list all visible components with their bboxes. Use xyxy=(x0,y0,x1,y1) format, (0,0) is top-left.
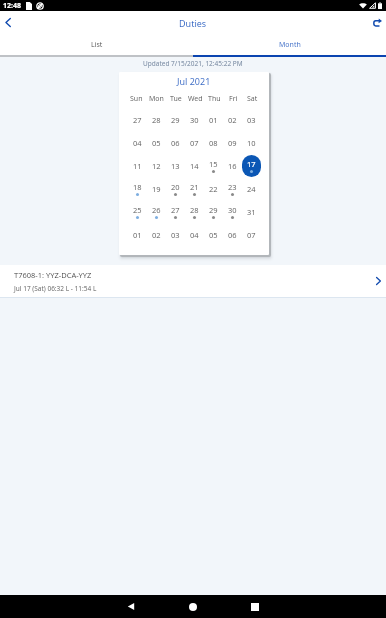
button[interactable]: 01 xyxy=(127,223,147,246)
button[interactable]: 07 xyxy=(185,131,204,154)
staticText: Duties xyxy=(179,17,207,29)
staticText: Wed xyxy=(188,94,203,104)
button[interactable]: 28 xyxy=(185,200,204,223)
staticText: 22 xyxy=(209,184,218,194)
staticText: 04 xyxy=(133,138,142,148)
button[interactable]: 22 xyxy=(204,177,223,200)
button[interactable]: 18 xyxy=(127,177,147,200)
staticText: 06 xyxy=(228,230,237,240)
button[interactable]: 04 xyxy=(185,223,204,246)
button[interactable]: 11 xyxy=(127,154,147,177)
button[interactable]: 20 xyxy=(166,177,185,200)
staticText: 01 xyxy=(133,230,142,240)
button[interactable]: 06 xyxy=(166,131,185,154)
staticText: 03 xyxy=(171,230,180,240)
staticText: Month xyxy=(279,40,301,50)
button[interactable]: 02 xyxy=(223,108,242,131)
button[interactable]: 10 xyxy=(242,131,261,154)
button[interactable]: 24 xyxy=(242,177,261,200)
button[interactable]: 30 xyxy=(223,200,242,223)
button[interactable]: Back xyxy=(0,11,16,34)
button[interactable]: 05 xyxy=(204,223,223,246)
button[interactable]: 02 xyxy=(147,223,166,246)
staticText: 05 xyxy=(152,138,161,148)
button[interactable]: 30 xyxy=(185,108,204,131)
staticText: 16 xyxy=(228,161,237,171)
staticText: 18 xyxy=(133,182,142,192)
staticText: 01 xyxy=(209,115,218,125)
staticText: 12:48 xyxy=(3,1,21,11)
staticText: 10 xyxy=(247,138,256,148)
staticText: Mon xyxy=(149,94,164,104)
staticText: 31 xyxy=(247,207,256,217)
staticText: 15 xyxy=(209,159,218,169)
button[interactable]: 29 xyxy=(166,108,185,131)
staticText: 17 xyxy=(247,159,256,169)
staticText: 14 xyxy=(190,161,199,171)
staticText: 28 xyxy=(190,205,199,215)
button[interactable]: 28 xyxy=(147,108,166,131)
staticText: Jul 17 (Sat) 06:32 L - 11:54 L xyxy=(14,284,97,293)
button[interactable]: 08 xyxy=(204,131,223,154)
staticText: 06 xyxy=(171,138,180,148)
button[interactable]: 25 xyxy=(127,200,147,223)
staticText: 04 xyxy=(190,230,199,240)
staticText: Thu xyxy=(208,94,221,104)
button[interactable]: 17 xyxy=(242,154,261,177)
button[interactable]: 21 xyxy=(185,177,204,200)
button[interactable]: 14 xyxy=(185,154,204,177)
button[interactable]: 03 xyxy=(242,108,261,131)
staticText: 27 xyxy=(133,115,142,125)
button[interactable]: 29 xyxy=(204,200,223,223)
staticText: 07 xyxy=(190,138,199,148)
staticText: 03 xyxy=(247,115,256,125)
staticText: T7608-1: YYZ-DCA-YYZ xyxy=(14,270,92,280)
button[interactable]: 26 xyxy=(147,200,166,223)
staticText: 11 xyxy=(133,161,142,171)
staticText: Sat xyxy=(247,94,258,104)
button[interactable]: Back xyxy=(114,595,148,618)
staticText: 02 xyxy=(152,230,161,240)
button[interactable]: T7608-1: YYZ-DCA-YYZ xyxy=(0,265,386,297)
button[interactable]: List xyxy=(0,34,193,55)
button[interactable]: 15 xyxy=(204,154,223,177)
staticText: 29 xyxy=(171,115,180,125)
staticText: Updated 7/15/2021, 12:45:22 PM xyxy=(143,59,243,68)
staticText: Jul 2021 xyxy=(177,75,211,87)
button[interactable]: 31 xyxy=(242,200,261,223)
button[interactable]: 03 xyxy=(166,223,185,246)
button[interactable]: 19 xyxy=(147,177,166,200)
button[interactable]: 27 xyxy=(127,108,147,131)
button[interactable]: 05 xyxy=(147,131,166,154)
button[interactable]: Refresh xyxy=(369,11,386,34)
staticText: 09 xyxy=(228,138,237,148)
button[interactable]: 07 xyxy=(242,223,261,246)
button[interactable]: 13 xyxy=(166,154,185,177)
staticText: Sun xyxy=(130,94,143,104)
staticText: 26 xyxy=(152,205,161,215)
staticText: 27 xyxy=(171,205,180,215)
button[interactable]: 01 xyxy=(204,108,223,131)
button[interactable]: 06 xyxy=(223,223,242,246)
staticText: Tue xyxy=(170,94,182,104)
button[interactable]: Recents xyxy=(238,595,272,618)
button[interactable]: 09 xyxy=(223,131,242,154)
staticText: 20 xyxy=(171,182,180,192)
button[interactable]: Home xyxy=(176,595,210,618)
button[interactable]: 16 xyxy=(223,154,242,177)
button[interactable]: 23 xyxy=(223,177,242,200)
staticText: 24 xyxy=(247,184,256,194)
staticText: List xyxy=(91,40,103,50)
staticText: 12 xyxy=(152,161,161,171)
staticText: 28 xyxy=(152,115,161,125)
button[interactable]: 12 xyxy=(147,154,166,177)
staticText: 05 xyxy=(209,230,218,240)
button[interactable]: 27 xyxy=(166,200,185,223)
staticText: 30 xyxy=(190,115,199,125)
staticText: 13 xyxy=(171,161,180,171)
staticText: 30 xyxy=(228,205,237,215)
button[interactable]: 04 xyxy=(127,131,147,154)
button[interactable]: Month xyxy=(193,34,386,55)
staticText: 02 xyxy=(228,115,237,125)
staticText: 29 xyxy=(209,205,218,215)
